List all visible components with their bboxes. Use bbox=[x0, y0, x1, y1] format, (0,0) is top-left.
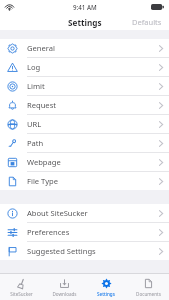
button[interactable]: Path bbox=[0, 134, 169, 152]
button[interactable]: Limit bbox=[0, 77, 169, 95]
button[interactable]: Defaults bbox=[125, 15, 169, 29]
staticText: File Type bbox=[27, 176, 159, 186]
button[interactable]: General bbox=[0, 39, 169, 57]
button[interactable]: SiteSucker bbox=[0, 274, 43, 300]
staticText: Downloads bbox=[52, 291, 77, 297]
button[interactable]: About SiteSucker bbox=[0, 204, 169, 222]
button[interactable]: Settings bbox=[85, 274, 127, 300]
staticText: Path bbox=[27, 138, 159, 148]
staticText: 9:41 AM bbox=[73, 3, 97, 11]
staticText: Settings bbox=[97, 291, 115, 297]
staticText: Settings bbox=[68, 17, 102, 28]
button[interactable]: Log bbox=[0, 58, 169, 76]
staticText: Suggested Settings bbox=[27, 246, 159, 256]
button[interactable]: Preferences bbox=[0, 223, 169, 241]
button[interactable]: Downloads bbox=[43, 274, 85, 300]
staticText: Webpage bbox=[27, 157, 159, 167]
staticText: Request bbox=[27, 100, 159, 110]
button[interactable]: Request bbox=[0, 96, 169, 114]
button[interactable]: Documents bbox=[127, 274, 169, 300]
staticText: Defaults bbox=[132, 17, 162, 27]
staticText: SiteSucker bbox=[10, 291, 33, 297]
button[interactable]: Webpage bbox=[0, 153, 169, 171]
staticText: About SiteSucker bbox=[27, 208, 159, 218]
staticText: General bbox=[27, 43, 159, 53]
staticText: Documents bbox=[136, 291, 161, 297]
button[interactable]: Suggested Settings bbox=[0, 242, 169, 260]
staticText: URL bbox=[27, 119, 159, 129]
staticText: Log bbox=[27, 62, 159, 72]
button[interactable]: URL bbox=[0, 115, 169, 133]
staticText: Limit bbox=[27, 81, 159, 91]
staticText: Preferences bbox=[27, 227, 159, 237]
button[interactable]: File Type bbox=[0, 172, 169, 190]
